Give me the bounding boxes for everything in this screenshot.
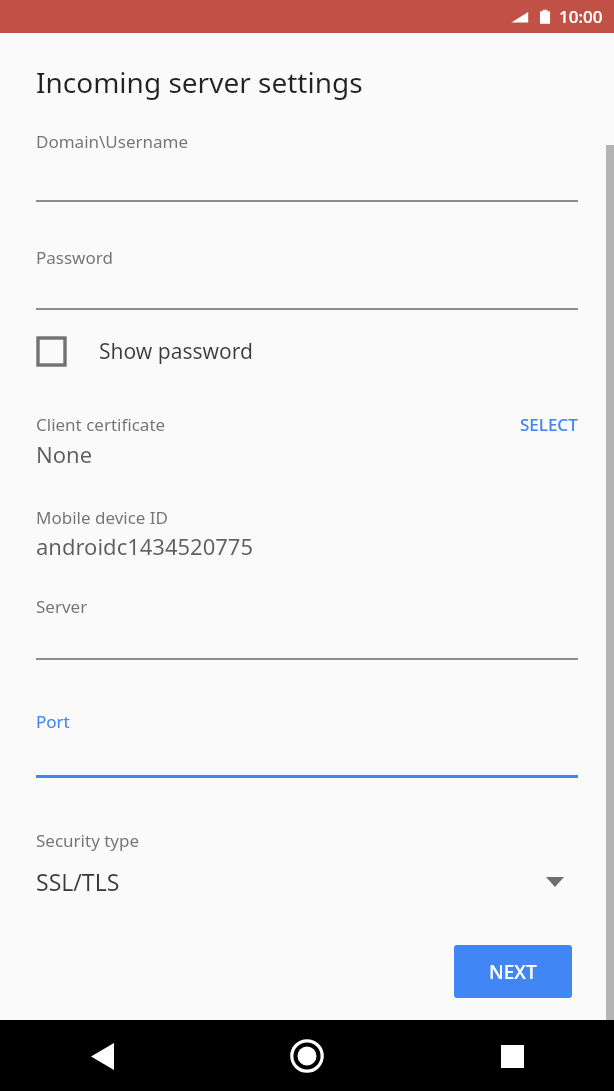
button[interactable]: Show password xyxy=(0,324,614,378)
staticText: Mobile device ID xyxy=(36,506,169,529)
button[interactable]: NEXT xyxy=(454,945,572,998)
staticText: Domain\Username xyxy=(36,130,189,153)
staticText: Show password xyxy=(99,337,253,366)
button[interactable]: Security type xyxy=(0,826,614,908)
staticText: Port xyxy=(36,710,70,733)
button[interactable]: Client certificate xyxy=(0,406,614,468)
staticText: SELECT xyxy=(520,413,578,436)
staticText: Client certificate xyxy=(36,413,166,436)
staticText: Password xyxy=(36,246,113,269)
staticText: 10:00 xyxy=(559,5,603,28)
button[interactable]: Recent apps xyxy=(483,1027,541,1085)
staticText: Server xyxy=(36,595,88,618)
button[interactable]: Back xyxy=(73,1027,131,1085)
staticText: Security type xyxy=(36,829,140,852)
button[interactable]: Home xyxy=(278,1027,336,1085)
button: Incoming server settings xyxy=(36,63,363,101)
staticText: Incoming server settings xyxy=(36,63,363,101)
staticText: SSL/TLS xyxy=(36,866,120,897)
button[interactable]: SELECT xyxy=(520,413,578,436)
staticText: androidc1434520775 xyxy=(36,531,254,561)
staticText: None xyxy=(36,439,93,469)
staticText: NEXT xyxy=(489,959,537,985)
